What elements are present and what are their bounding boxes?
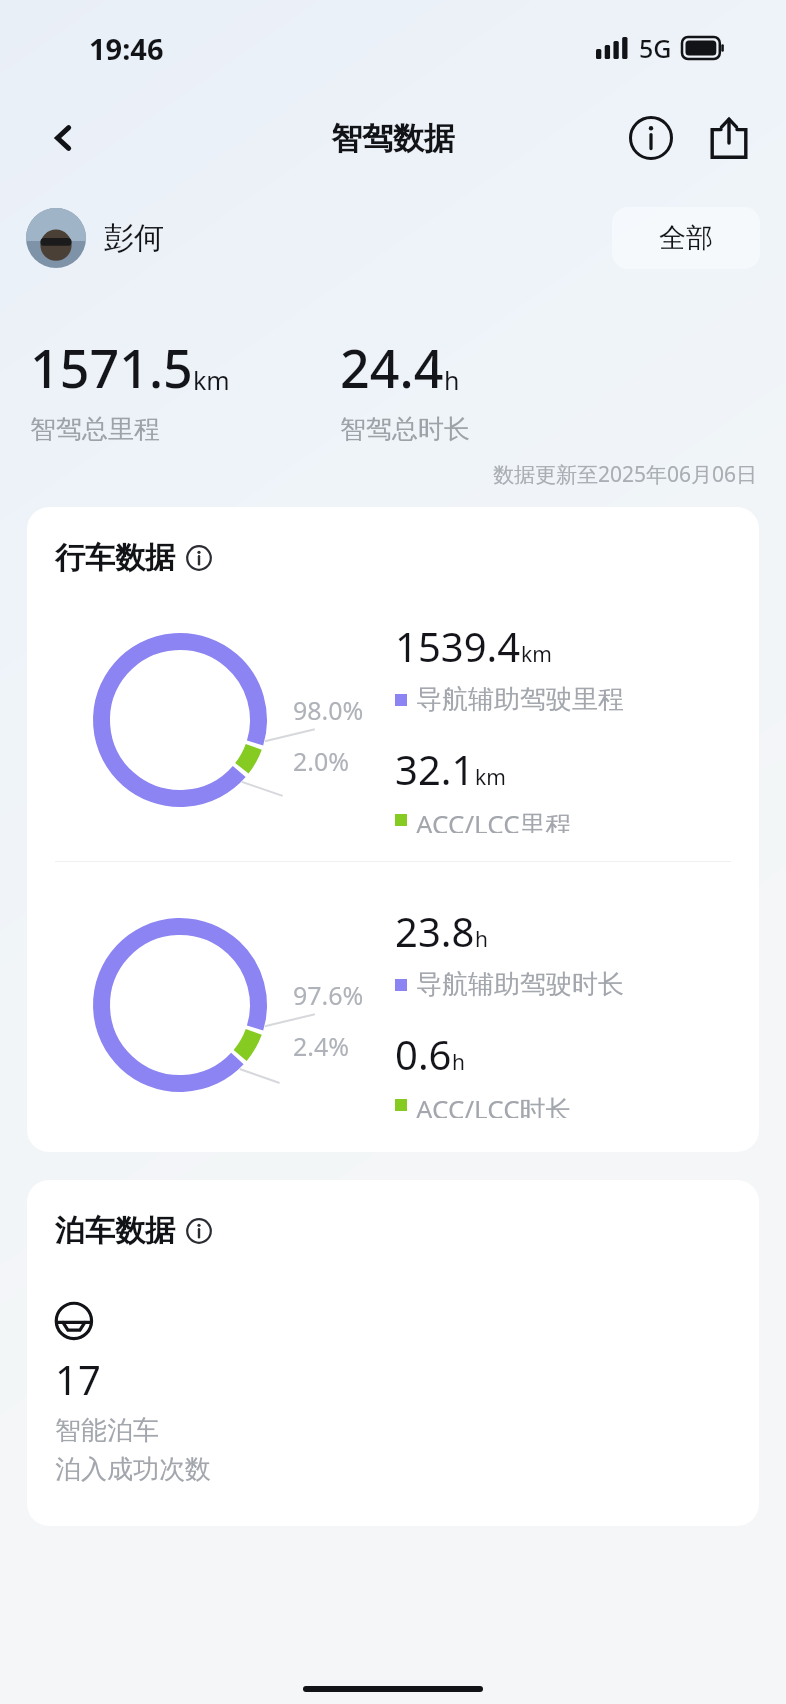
staticText: 23.8	[395, 904, 475, 958]
staticText: 彭何	[104, 219, 164, 257]
button[interactable]: Share	[698, 107, 760, 169]
staticText: 0.6	[395, 1027, 452, 1081]
staticText: 32.1	[395, 742, 475, 796]
staticText: h	[444, 363, 460, 397]
staticText: h	[452, 1048, 465, 1077]
staticText: 智驾总里程	[30, 413, 160, 446]
button[interactable]: 彭何	[26, 208, 164, 268]
staticText: km	[475, 763, 506, 792]
button[interactable]: 全部	[612, 207, 760, 269]
staticText: 行车数据	[55, 539, 175, 577]
button[interactable]: 行车数据	[27, 507, 759, 1152]
staticText: ACC/LCC时长	[416, 1091, 572, 1118]
staticText: 17	[55, 1352, 101, 1406]
button[interactable]: Info	[620, 107, 682, 169]
staticText: 泊车数据	[55, 1212, 175, 1250]
staticText: 1571.5	[30, 332, 193, 403]
staticText: ACC/LCC里程	[416, 806, 572, 833]
staticText: 5G	[639, 31, 672, 65]
button[interactable]: 泊车数据	[27, 1180, 759, 1526]
staticText: 智驾总时长	[340, 413, 470, 446]
staticText: km	[193, 363, 230, 397]
staticText: 98.0%	[293, 693, 364, 727]
staticText: km	[521, 640, 552, 669]
staticText: 97.6%	[293, 978, 364, 1012]
staticText: 导航辅助驾驶时长	[416, 968, 624, 1001]
staticText: 2.0%	[293, 744, 350, 778]
button[interactable]: Back	[32, 106, 96, 170]
staticText: 泊入成功次数	[55, 1453, 211, 1486]
staticText: 全部	[659, 221, 713, 255]
staticText: 智能泊车	[55, 1414, 159, 1447]
staticText: 智驾数据	[331, 119, 455, 158]
staticText: 19:46	[89, 29, 164, 68]
staticText: 2.4%	[293, 1029, 350, 1063]
staticText: h	[475, 925, 488, 954]
staticText: 24.4	[340, 332, 444, 403]
staticText: 数据更新至2025年06月06日	[493, 460, 758, 489]
staticText: 1539.4	[395, 619, 521, 673]
staticText: 导航辅助驾驶里程	[416, 683, 624, 716]
